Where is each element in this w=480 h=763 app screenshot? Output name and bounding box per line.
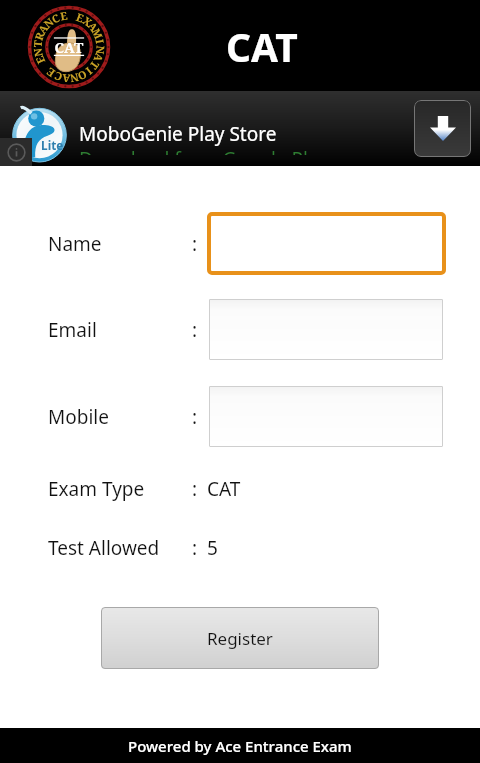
staticText: Email [48, 317, 97, 343]
staticText: CAT [226, 20, 298, 73]
staticText: : [192, 317, 198, 343]
button[interactable] [207, 212, 446, 275]
button[interactable]: Register [101, 607, 379, 669]
staticText: Download from Google Play [79, 146, 329, 155]
staticText: Powered by Ace Entrance Exam [128, 736, 352, 756]
staticText: Mobile [48, 404, 109, 430]
button[interactable] [209, 386, 443, 447]
staticText: : [192, 404, 198, 430]
button[interactable]: MoboGenie Play Store [0, 91, 480, 166]
staticText: Register [207, 627, 273, 650]
staticText: : [192, 535, 198, 561]
staticText: CAT [207, 476, 241, 502]
staticText: Test Allowed [48, 535, 160, 561]
staticText: MoboGenie Play Store [79, 121, 277, 147]
button[interactable]: Ad info [0, 138, 32, 166]
staticText: Name [48, 231, 102, 257]
staticText: Exam Type [48, 476, 145, 502]
button[interactable] [209, 299, 443, 360]
button[interactable]: Download [414, 100, 471, 157]
staticText: 5 [207, 535, 218, 561]
staticText: : [192, 476, 198, 502]
other: Ace Entrance Examination logo [27, 5, 111, 89]
staticText: : [192, 231, 198, 257]
